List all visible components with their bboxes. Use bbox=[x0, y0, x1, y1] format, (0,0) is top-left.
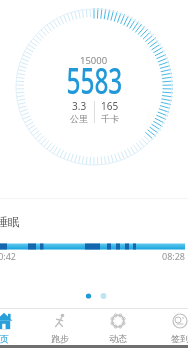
staticText: 千卡 bbox=[101, 113, 119, 124]
button[interactable]: 跑步 bbox=[38, 312, 82, 344]
staticText: 公里 bbox=[70, 113, 88, 124]
staticText: 165 bbox=[101, 99, 119, 113]
staticText: 20:42 bbox=[0, 250, 17, 262]
staticText: 签到 bbox=[171, 333, 188, 344]
button[interactable]: 首页 bbox=[0, 312, 22, 344]
staticText: 08:28 bbox=[162, 250, 186, 262]
staticText: 跑步 bbox=[51, 333, 69, 344]
button[interactable]: 动态 bbox=[96, 312, 140, 344]
staticText: 5583 bbox=[66, 54, 122, 104]
staticText: 动态 bbox=[109, 333, 127, 344]
staticText: 3.3 bbox=[72, 99, 87, 113]
staticText: 15000 bbox=[80, 54, 108, 67]
button[interactable]: 签到 bbox=[158, 312, 188, 344]
staticText: 首页 bbox=[0, 333, 9, 344]
staticText: 睡眠 bbox=[0, 214, 20, 229]
